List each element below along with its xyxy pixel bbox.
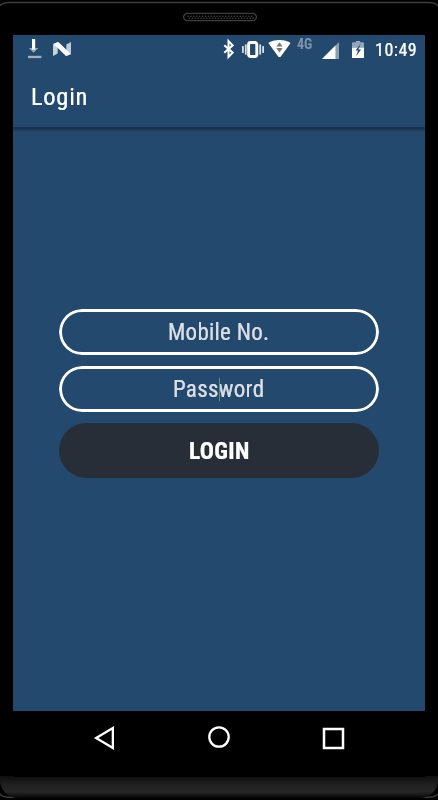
staticText: Login — [31, 82, 89, 111]
staticText: 10:49 — [375, 39, 418, 60]
button[interactable]: Recent apps — [307, 712, 359, 764]
button[interactable]: Password — [59, 366, 379, 412]
staticText: 4G — [297, 36, 313, 52]
staticText: LOGIN — [189, 437, 250, 465]
staticText: Mobile No. — [168, 319, 270, 346]
button[interactable]: LOGIN — [59, 423, 379, 478]
button[interactable]: Back — [78, 712, 130, 764]
button[interactable]: Home — [193, 711, 245, 763]
staticText: Password — [173, 376, 265, 403]
button[interactable]: Mobile No. — [59, 309, 379, 355]
